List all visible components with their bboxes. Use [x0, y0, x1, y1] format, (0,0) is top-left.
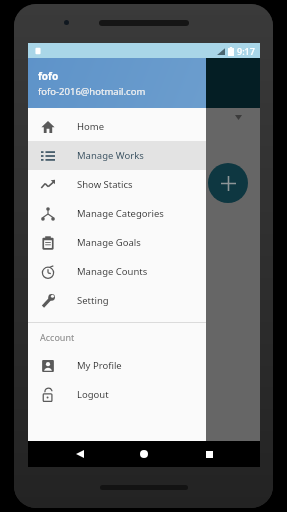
staticText: Manage Works [77, 149, 144, 162]
button[interactable]: Recents [196, 441, 222, 467]
button[interactable]: Add [208, 163, 248, 203]
button[interactable]: My Profile [28, 351, 206, 380]
staticText: Manage Counts [77, 265, 148, 278]
button[interactable]: Manage Goals [28, 228, 206, 257]
staticText: Logout [77, 388, 109, 401]
button[interactable]: Show Statics [28, 170, 206, 199]
button[interactable]: Home [131, 441, 157, 467]
staticText: My Profile [77, 359, 122, 372]
staticText: 9:17 [237, 45, 255, 57]
staticText: Manage Categories [77, 207, 164, 220]
staticText: Setting [77, 294, 109, 307]
button[interactable]: fofo [28, 58, 206, 108]
button[interactable]: Manage Works [28, 141, 206, 170]
staticText: Home [77, 120, 105, 133]
staticText: Show Statics [77, 178, 133, 191]
button[interactable]: Setting [28, 286, 206, 315]
staticText: fofo-2016@hotmail.com [38, 85, 146, 98]
staticText: fofo [38, 69, 59, 83]
button[interactable]: Logout [28, 380, 206, 409]
button[interactable]: Manage Counts [28, 257, 206, 286]
button[interactable]: Home [28, 112, 206, 141]
staticText: Account [40, 331, 75, 343]
button[interactable]: Manage Categories [28, 199, 206, 228]
button[interactable]: Back [67, 441, 93, 467]
staticText: Manage Goals [77, 236, 141, 249]
